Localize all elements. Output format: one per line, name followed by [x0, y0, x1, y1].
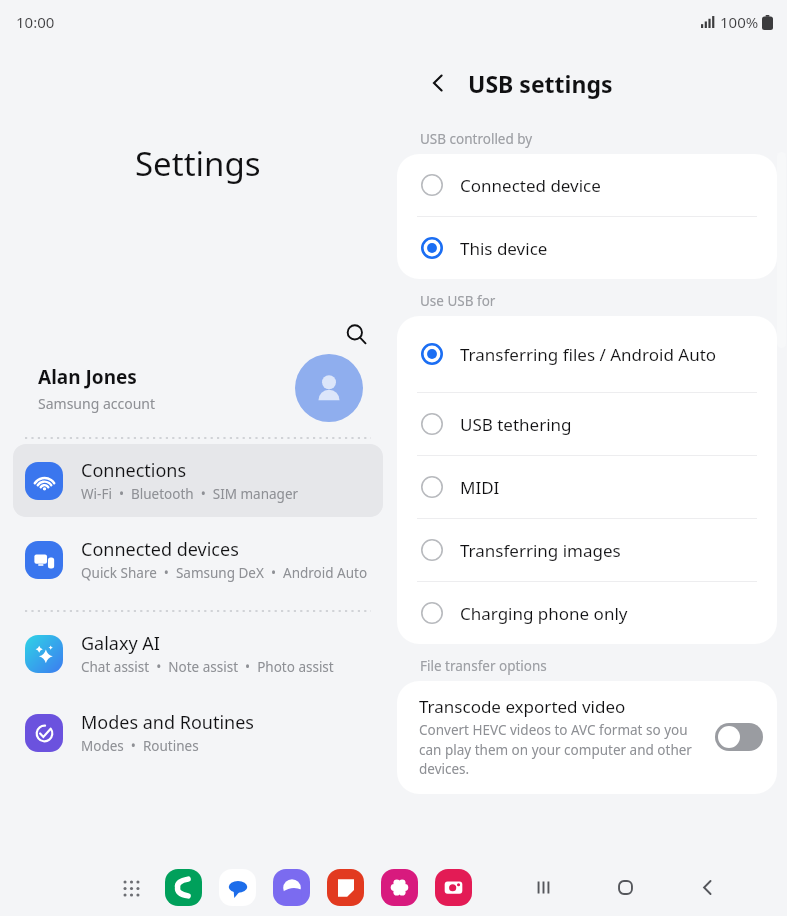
staticText: Settings	[135, 141, 261, 186]
staticText: Quick Share • Samsung DeX • Android Auto	[81, 564, 368, 582]
staticText: Modes and Routines	[81, 710, 254, 735]
button[interactable]: Connected devices	[13, 523, 383, 596]
staticText: Connected device	[460, 174, 761, 197]
staticText: Connections	[81, 458, 187, 483]
staticText: Transferring files / Android Auto	[460, 343, 761, 366]
staticText: Transferring images	[460, 539, 761, 562]
button[interactable]: Galaxy AI	[13, 617, 383, 690]
button[interactable]: Internet	[273, 869, 310, 906]
button[interactable]: Gallery	[381, 869, 418, 906]
staticText: Chat assist • Note assist • Photo assist	[81, 658, 334, 676]
button[interactable]: MIDI	[397, 456, 777, 519]
staticText: Convert HEVC videos to AVC format so you…	[419, 721, 705, 778]
button[interactable]: Camera	[435, 869, 472, 906]
staticText: Charging phone only	[460, 602, 761, 625]
button[interactable]: Transcode exported video	[397, 681, 777, 794]
staticText: Transcode exported video	[419, 695, 626, 718]
staticText: 100%	[720, 12, 759, 32]
button[interactable]: Transferring images	[397, 519, 777, 582]
button[interactable]: USB tethering	[397, 393, 777, 456]
button[interactable]: Transcode exported video toggle	[715, 723, 763, 751]
button[interactable]: Back	[416, 61, 460, 105]
staticText: This device	[460, 237, 761, 260]
button[interactable]: Messages	[219, 869, 256, 906]
staticText: USB tethering	[460, 413, 761, 436]
button[interactable]: Connected device	[397, 154, 777, 217]
button[interactable]: Alan Jones	[0, 346, 396, 430]
button[interactable]: All apps	[114, 871, 148, 905]
button[interactable]: Charging phone only	[397, 582, 777, 644]
staticText: Alan Jones	[38, 364, 137, 390]
staticText: USB controlled by	[420, 130, 533, 148]
staticText: Wi-Fi • Bluetooth • SIM manager	[81, 485, 299, 503]
button[interactable]: Phone	[165, 869, 202, 906]
staticText: Connected devices	[81, 537, 239, 562]
staticText: USB settings	[468, 68, 613, 99]
button[interactable]: Connections	[13, 444, 383, 517]
button[interactable]: Recents	[523, 867, 563, 907]
staticText: Galaxy AI	[81, 631, 160, 656]
button[interactable]: This device	[397, 217, 777, 279]
button[interactable]: Notes	[327, 869, 364, 906]
button[interactable]: Search	[334, 312, 378, 356]
staticText: File transfer options	[420, 657, 547, 675]
staticText: 10:00	[16, 12, 55, 32]
button[interactable]: Home	[605, 867, 645, 907]
staticText: MIDI	[460, 476, 761, 499]
staticText: Use USB for	[420, 292, 496, 310]
button[interactable]: Transferring files / Android Auto	[397, 316, 777, 393]
button[interactable]: Back	[687, 867, 727, 907]
staticText: Modes • Routines	[81, 737, 199, 755]
staticText: Samsung account	[38, 394, 156, 413]
button[interactable]: Modes and Routines	[13, 696, 383, 769]
